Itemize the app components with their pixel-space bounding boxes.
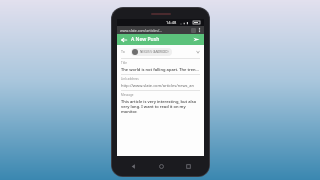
button[interactable]: Title [121, 61, 200, 72]
button[interactable]: Home [154, 159, 168, 173]
staticText: 14:48 [166, 20, 177, 25]
staticText: Title [121, 61, 127, 65]
button[interactable]: Recent apps [181, 159, 195, 173]
button[interactable]: To [121, 45, 200, 58]
staticText: Link address [121, 77, 139, 81]
staticText: A New Push [131, 36, 160, 43]
staticText: To [121, 49, 125, 54]
button[interactable]: Expand recipients [196, 50, 200, 54]
staticText: http://www.slate.com/articles/news_an [121, 83, 194, 88]
button[interactable]: Send [193, 36, 200, 43]
staticText: www.slate.com/articles/... [120, 28, 191, 33]
button[interactable]: Link address [121, 77, 200, 88]
button[interactable]: Back [126, 159, 140, 173]
staticText: The world is not falling apart. The tren… [121, 67, 200, 72]
button[interactable]: www.slate.com/articles/... [120, 26, 201, 34]
button[interactable]: More options [198, 27, 201, 33]
button[interactable]: Message [121, 93, 200, 114]
staticText: NEXUS 5 (ANDROID) [140, 50, 169, 54]
button[interactable]: Back [121, 37, 127, 43]
staticText: This article is very interesting, but al… [121, 99, 200, 114]
staticText: Message [121, 93, 134, 97]
